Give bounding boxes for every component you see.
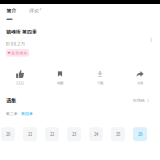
staticText: 第二季 [6, 111, 18, 116]
button[interactable]: 20 [1, 127, 15, 141]
button[interactable]: 简介 [6, 7, 16, 20]
staticText: 37 [39, 7, 41, 11]
button[interactable]: 第二季 [6, 111, 18, 116]
staticText: 26 [138, 131, 142, 137]
staticText: 21 [28, 131, 32, 137]
staticText: 简介 [6, 7, 16, 14]
button[interactable]: 23 [67, 127, 81, 141]
staticText: 20 [6, 131, 10, 137]
staticText: 23 [72, 131, 76, 137]
staticText: 评论 [29, 7, 39, 14]
button[interactable]: 第四季 [21, 111, 33, 116]
staticText: 98.2万 [10, 40, 25, 47]
button[interactable]: Favorite [40, 70, 80, 85]
staticText: 已完结 [133, 97, 145, 103]
button[interactable]: 26 [133, 127, 147, 141]
staticText: 3322 [16, 80, 24, 85]
button[interactable]: 24 [89, 127, 103, 141]
staticText: 选集 [6, 96, 16, 104]
staticText: 下载 [97, 80, 103, 85]
button[interactable]: 22 [45, 127, 59, 141]
staticText: 25 [116, 131, 120, 137]
button[interactable]: Share [120, 70, 160, 85]
staticText: 22 [50, 131, 54, 137]
button[interactable]: 选集 [0, 94, 160, 106]
staticText: 24 [94, 131, 98, 137]
staticText: 第四季 [21, 111, 33, 116]
button[interactable]: Like [0, 70, 40, 85]
staticText: 收藏 [57, 80, 63, 85]
button[interactable]: 21 [23, 127, 37, 141]
button[interactable]: 25 [111, 127, 125, 141]
staticText: 镇魂街 第四季 [6, 28, 37, 35]
button[interactable]: Download [80, 70, 120, 85]
button[interactable]: 评论 [29, 7, 41, 14]
button[interactable]: Show show details [144, 28, 160, 46]
staticText: 分享 [137, 80, 143, 85]
staticText: 会员抢先 [11, 50, 27, 56]
